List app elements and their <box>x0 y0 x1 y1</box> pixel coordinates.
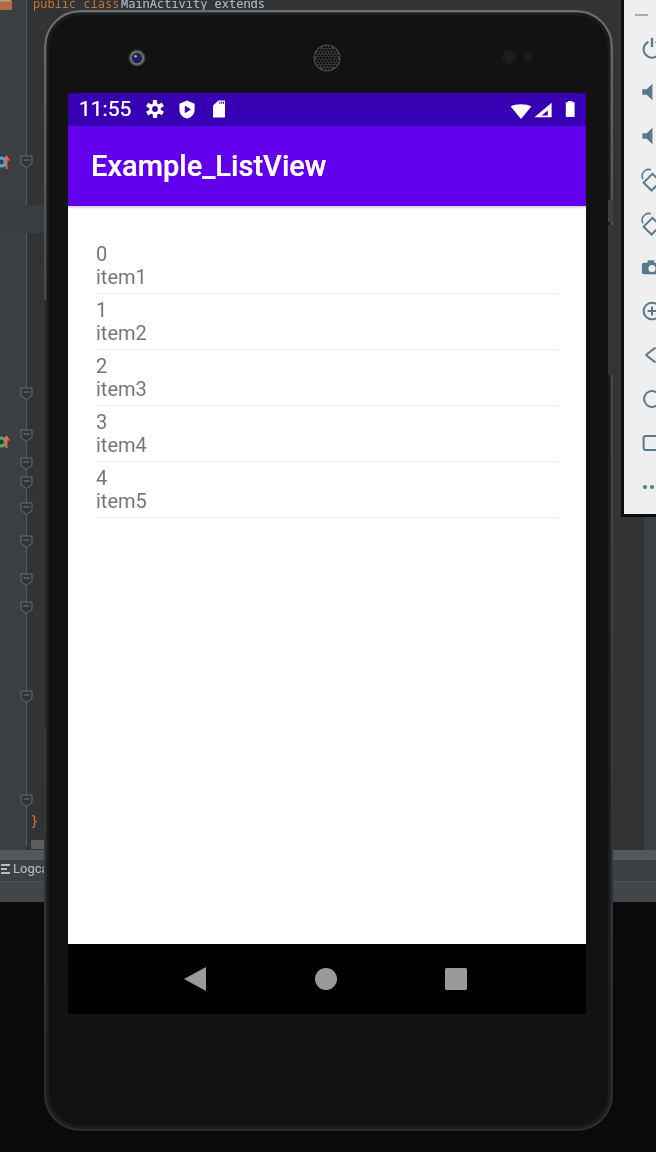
button[interactable]: Volume down <box>636 118 656 154</box>
staticText: MainActivity extends <box>121 0 266 11</box>
staticText: 1 <box>96 298 108 321</box>
staticText: item4 <box>96 433 147 456</box>
button[interactable]: Power <box>636 30 656 66</box>
button[interactable]: Location <box>636 293 656 329</box>
button[interactable]: Home <box>636 381 656 417</box>
staticText: } <box>30 809 40 829</box>
button[interactable]: Take screenshot <box>636 250 656 286</box>
staticText: item1 <box>96 265 147 288</box>
staticText: 11:55 <box>79 97 132 122</box>
button[interactable]: Minimize <box>630 6 652 24</box>
button[interactable]: More <box>636 469 656 505</box>
button[interactable]: Recent apps <box>426 949 486 1009</box>
staticText: 4 <box>96 466 108 489</box>
staticText: 3 <box>96 410 108 433</box>
button[interactable]: 2 <box>68 350 586 406</box>
staticText: item2 <box>96 321 147 344</box>
button[interactable]: 1 <box>68 294 586 350</box>
staticText: public class <box>33 0 127 11</box>
button[interactable]: Rotate left <box>636 162 656 198</box>
staticText: 2 <box>96 354 108 377</box>
staticText: Example_ListView <box>91 149 327 183</box>
button[interactable]: 3 <box>68 406 586 462</box>
button[interactable]: 0 <box>68 238 586 294</box>
button[interactable]: Volume up <box>636 74 656 110</box>
staticText: item3 <box>96 377 147 400</box>
staticText: Logca <box>13 861 49 876</box>
staticText: 0 <box>96 242 108 265</box>
button[interactable]: Rotate right <box>636 206 656 242</box>
button[interactable]: Home <box>296 949 356 1009</box>
button[interactable]: Back <box>165 949 225 1009</box>
staticText: item5 <box>96 489 147 512</box>
button[interactable]: Back <box>636 337 656 373</box>
button[interactable]: 4 <box>68 462 586 518</box>
button[interactable]: Overview <box>636 425 656 461</box>
